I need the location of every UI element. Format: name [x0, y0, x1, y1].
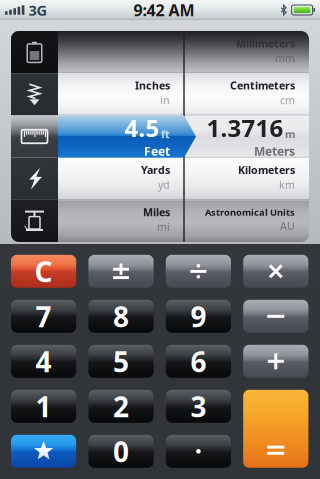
staticText: cm	[280, 93, 295, 107]
button[interactable]: 3	[166, 390, 231, 423]
staticText: mi	[157, 220, 170, 234]
staticText: 8	[113, 298, 129, 335]
staticText: AU	[280, 219, 295, 233]
staticText: 1.3716	[206, 112, 283, 144]
button[interactable]: Plus minus	[88, 255, 154, 288]
button[interactable]: 7	[11, 300, 76, 333]
button[interactable]: Inches	[58, 73, 170, 112]
staticText: 4.5	[124, 112, 159, 144]
button[interactable]: Equals	[243, 390, 308, 468]
staticText: 7	[36, 298, 52, 335]
staticText: m	[285, 127, 295, 141]
staticText: 5	[113, 343, 129, 380]
staticText: Meters	[254, 143, 295, 159]
button[interactable]: Decimal point	[166, 435, 231, 468]
staticText: 3	[190, 388, 206, 425]
button[interactable]: Plus	[243, 345, 308, 378]
staticText: 6	[190, 343, 206, 380]
staticText: Astronomical Units	[205, 206, 295, 218]
button[interactable]: Miles	[58, 200, 170, 239]
button[interactable]: Millimeters	[184, 31, 295, 70]
staticText: yd	[158, 177, 170, 192]
button[interactable]: 8	[88, 300, 154, 333]
button[interactable]: Power	[11, 158, 58, 200]
button[interactable]: 2	[88, 390, 154, 423]
staticText: Yards	[141, 163, 170, 177]
staticText: mm	[275, 51, 295, 65]
button[interactable]: 1	[11, 390, 76, 423]
staticText: 2	[113, 388, 129, 425]
button[interactable]: Minus	[243, 300, 308, 333]
button[interactable]: Astronomical Units	[184, 200, 295, 239]
button[interactable]: Yards	[58, 158, 170, 197]
button[interactable]: Divide	[166, 255, 231, 288]
staticText: 1	[36, 388, 52, 425]
staticText: 3G	[28, 0, 47, 20]
button[interactable]: 9	[166, 300, 231, 333]
button[interactable]: 0	[88, 435, 154, 468]
staticText: 9:42 AM	[133, 0, 194, 21]
staticText: 4	[36, 343, 52, 380]
button[interactable]: 6	[166, 345, 231, 378]
button[interactable]: Length	[11, 115, 58, 158]
button[interactable]: Centimeters	[184, 73, 295, 112]
staticText: Millimeters	[236, 36, 295, 50]
staticText: in	[160, 93, 170, 107]
staticText: Kilometers	[238, 163, 295, 177]
button[interactable]: Pressure	[11, 200, 58, 242]
button[interactable]: Energy	[11, 31, 58, 73]
staticText: 0	[113, 433, 129, 470]
staticText: Centimeters	[230, 78, 295, 93]
button[interactable]: 4	[11, 345, 76, 378]
staticText: Feet	[144, 143, 170, 159]
staticText: Miles	[143, 205, 170, 219]
button[interactable]: Kilometers	[184, 158, 295, 197]
button[interactable]: Force	[11, 73, 58, 115]
staticText: 9	[190, 298, 206, 335]
button[interactable]: Favorites	[11, 435, 76, 468]
button[interactable]: C	[11, 255, 76, 288]
button[interactable]: Multiply	[243, 255, 308, 288]
staticText: ft	[161, 127, 170, 141]
staticText: C	[35, 253, 53, 290]
button[interactable]: 5	[88, 345, 154, 378]
staticText: km	[279, 177, 295, 192]
staticText: Inches	[135, 78, 170, 93]
